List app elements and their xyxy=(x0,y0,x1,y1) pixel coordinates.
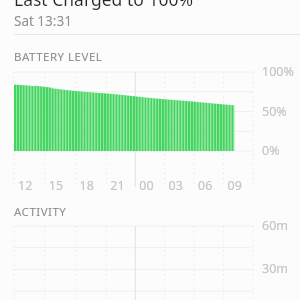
button[interactable] xyxy=(0,0,300,300)
